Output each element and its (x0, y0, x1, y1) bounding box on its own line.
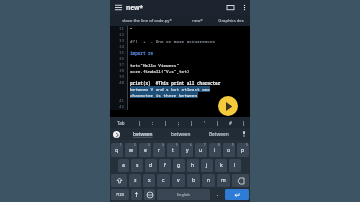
staticText: x (148, 177, 151, 184)
button[interactable]: English (157, 189, 210, 200)
button[interactable]: a (118, 159, 129, 172)
staticText: ; (178, 120, 180, 126)
staticText: o (227, 147, 231, 154)
button[interactable]: slove the line of code.py* (110, 15, 183, 26)
button[interactable]: s (131, 159, 143, 172)
button[interactable]: Shift (111, 174, 127, 187)
button[interactable]: | (132, 117, 146, 128)
staticText: : (152, 120, 154, 126)
button[interactable]: v (172, 174, 185, 187)
button[interactable]: h (187, 159, 199, 172)
button[interactable]: between (162, 128, 200, 140)
button[interactable]: Voice input (238, 128, 250, 140)
button[interactable]: q (111, 143, 123, 157)
staticText: 9 (232, 143, 234, 147)
button[interactable]: new* (183, 15, 211, 26)
button[interactable]: j (201, 159, 213, 172)
staticText: 35 (119, 50, 125, 56)
button[interactable]: | (237, 117, 250, 128)
staticText: k (220, 162, 223, 169)
staticText: 0 (246, 143, 248, 147)
staticText: | (164, 120, 167, 126)
button[interactable]: f (159, 159, 171, 172)
button[interactable]: l (229, 159, 241, 172)
staticText: x=re.findall("V+s",txt) (130, 68, 190, 74)
staticText: 34 (119, 44, 125, 50)
staticText: txt="Hello Viewers" (130, 62, 179, 68)
button[interactable]: # (224, 117, 237, 128)
button[interactable]: Graphics des (211, 15, 250, 26)
button[interactable]: i (209, 143, 221, 157)
button[interactable]: ?123 (111, 189, 129, 200)
staticText: 39 (119, 74, 125, 80)
staticText: d (149, 162, 153, 169)
button[interactable]: x (143, 174, 155, 187)
staticText: t (172, 147, 174, 154)
staticText: 8 (218, 143, 220, 147)
staticText: 4 (162, 143, 164, 147)
button[interactable]: Play (218, 96, 238, 116)
staticText: l (234, 162, 236, 169)
button[interactable]: o (223, 143, 235, 157)
button[interactable]: Folder (222, 0, 238, 15)
button[interactable]: n (202, 174, 215, 187)
button[interactable]: Backspace (232, 174, 249, 187)
button[interactable]: t (167, 143, 179, 157)
staticText: 37 (119, 62, 125, 68)
staticText: j (206, 162, 208, 169)
staticText: 7 (204, 143, 206, 147)
button[interactable]: More options (238, 0, 250, 15)
staticText: s (136, 162, 139, 169)
staticText: g (177, 162, 181, 169)
button[interactable]: Emoji (131, 189, 142, 200)
button[interactable]: Between (200, 128, 238, 140)
staticText: i (214, 147, 216, 154)
staticText: c (162, 177, 165, 184)
button[interactable]: : (146, 117, 159, 128)
button[interactable]: r (153, 143, 165, 157)
button[interactable]: w (125, 143, 137, 157)
button[interactable]: ; (172, 117, 185, 128)
button[interactable]: e (139, 143, 151, 157)
button[interactable]: y (181, 143, 193, 157)
staticText: import re (130, 50, 154, 56)
staticText: w (129, 147, 133, 154)
staticText: 36 (119, 56, 125, 62)
button[interactable]: Menu (110, 0, 126, 15)
staticText: 42 (119, 104, 125, 110)
staticText: m (221, 177, 226, 184)
button[interactable]: m (217, 174, 230, 187)
button[interactable]: | (159, 117, 172, 128)
staticText: 6 (190, 143, 192, 147)
button[interactable]: c (157, 174, 170, 187)
button[interactable]: Change language (144, 189, 155, 200)
button[interactable]: . (212, 189, 223, 200)
button[interactable]: u (195, 143, 207, 157)
staticText: u (199, 147, 203, 154)
button[interactable]: ' (198, 117, 211, 128)
staticText: | (190, 120, 193, 126)
button[interactable]: b (187, 174, 200, 187)
button[interactable]: z (129, 174, 141, 187)
button[interactable]: Expand suggestions (110, 128, 123, 140)
staticText: 40 (119, 80, 125, 86)
button[interactable]: d (145, 159, 157, 172)
staticText: # (229, 120, 232, 126)
staticText: between V and s but atleast one (130, 86, 210, 92)
button[interactable]: k (215, 159, 227, 172)
button[interactable]: Tab (110, 117, 132, 128)
button[interactable]: g (173, 159, 185, 172)
staticText: between (133, 131, 153, 138)
staticText: print(x) #This print all character (130, 80, 221, 86)
staticText: 5 (176, 143, 178, 147)
button[interactable]: Enter (225, 189, 249, 200)
button[interactable]: p (237, 143, 249, 157)
staticText: y (186, 147, 189, 154)
staticText: 33 (119, 38, 125, 44)
staticText: English (177, 192, 190, 197)
button[interactable]: between (123, 128, 162, 140)
button[interactable]: | (211, 117, 224, 128)
staticText: z (134, 177, 137, 184)
staticText: | (242, 120, 245, 126)
button[interactable]: | (185, 117, 198, 128)
